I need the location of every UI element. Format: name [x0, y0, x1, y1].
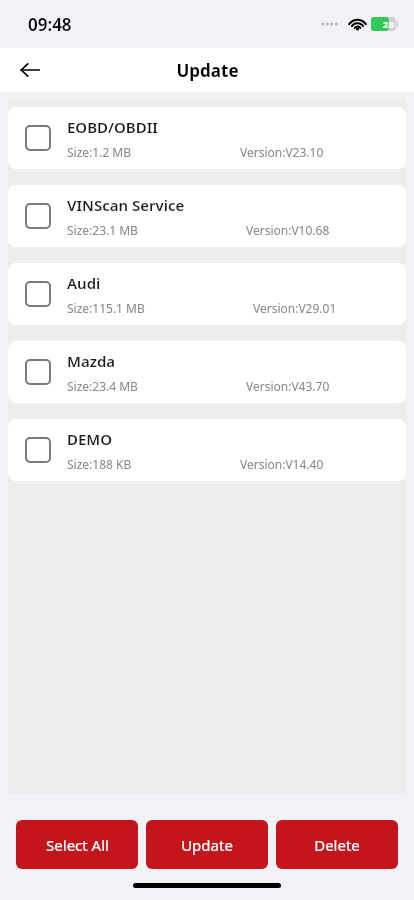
- staticText: Size:188 KB: [67, 456, 132, 472]
- staticText: Update: [176, 59, 239, 82]
- staticText: Mazda: [67, 351, 116, 371]
- button[interactable]: VINScan Service: [8, 185, 406, 247]
- staticText: Size:115.1 MB: [67, 300, 145, 316]
- staticText: Size:23.4 MB: [67, 378, 138, 394]
- staticText: Version:V14.40: [240, 456, 324, 472]
- staticText: Version:V10.68: [246, 222, 330, 238]
- staticText: DEMO: [67, 429, 113, 449]
- button[interactable]: Select All: [16, 820, 138, 869]
- staticText: Audi: [67, 273, 101, 293]
- staticText: Version:V23.10: [240, 144, 324, 160]
- button[interactable]: DEMO: [8, 419, 406, 481]
- staticText: VINScan Service: [67, 195, 185, 215]
- button[interactable]: Back: [10, 50, 50, 90]
- button[interactable]: Update: [146, 820, 268, 869]
- staticText: 28: [383, 18, 394, 31]
- staticText: Version:V43.70: [246, 378, 330, 394]
- staticText: 09:48: [28, 13, 72, 36]
- staticText: Size:23.1 MB: [67, 222, 138, 238]
- button[interactable]: EOBD/OBDII: [8, 107, 406, 169]
- staticText: Delete: [314, 835, 360, 855]
- staticText: EOBD/OBDII: [67, 117, 158, 137]
- staticText: Select All: [46, 835, 109, 855]
- button[interactable]: Audi: [8, 263, 406, 325]
- staticText: Size:1.2 MB: [67, 144, 132, 160]
- button[interactable]: Delete: [276, 820, 398, 869]
- staticText: Update: [181, 835, 233, 855]
- button[interactable]: Mazda: [8, 341, 406, 403]
- staticText: Version:V29.01: [253, 300, 337, 316]
